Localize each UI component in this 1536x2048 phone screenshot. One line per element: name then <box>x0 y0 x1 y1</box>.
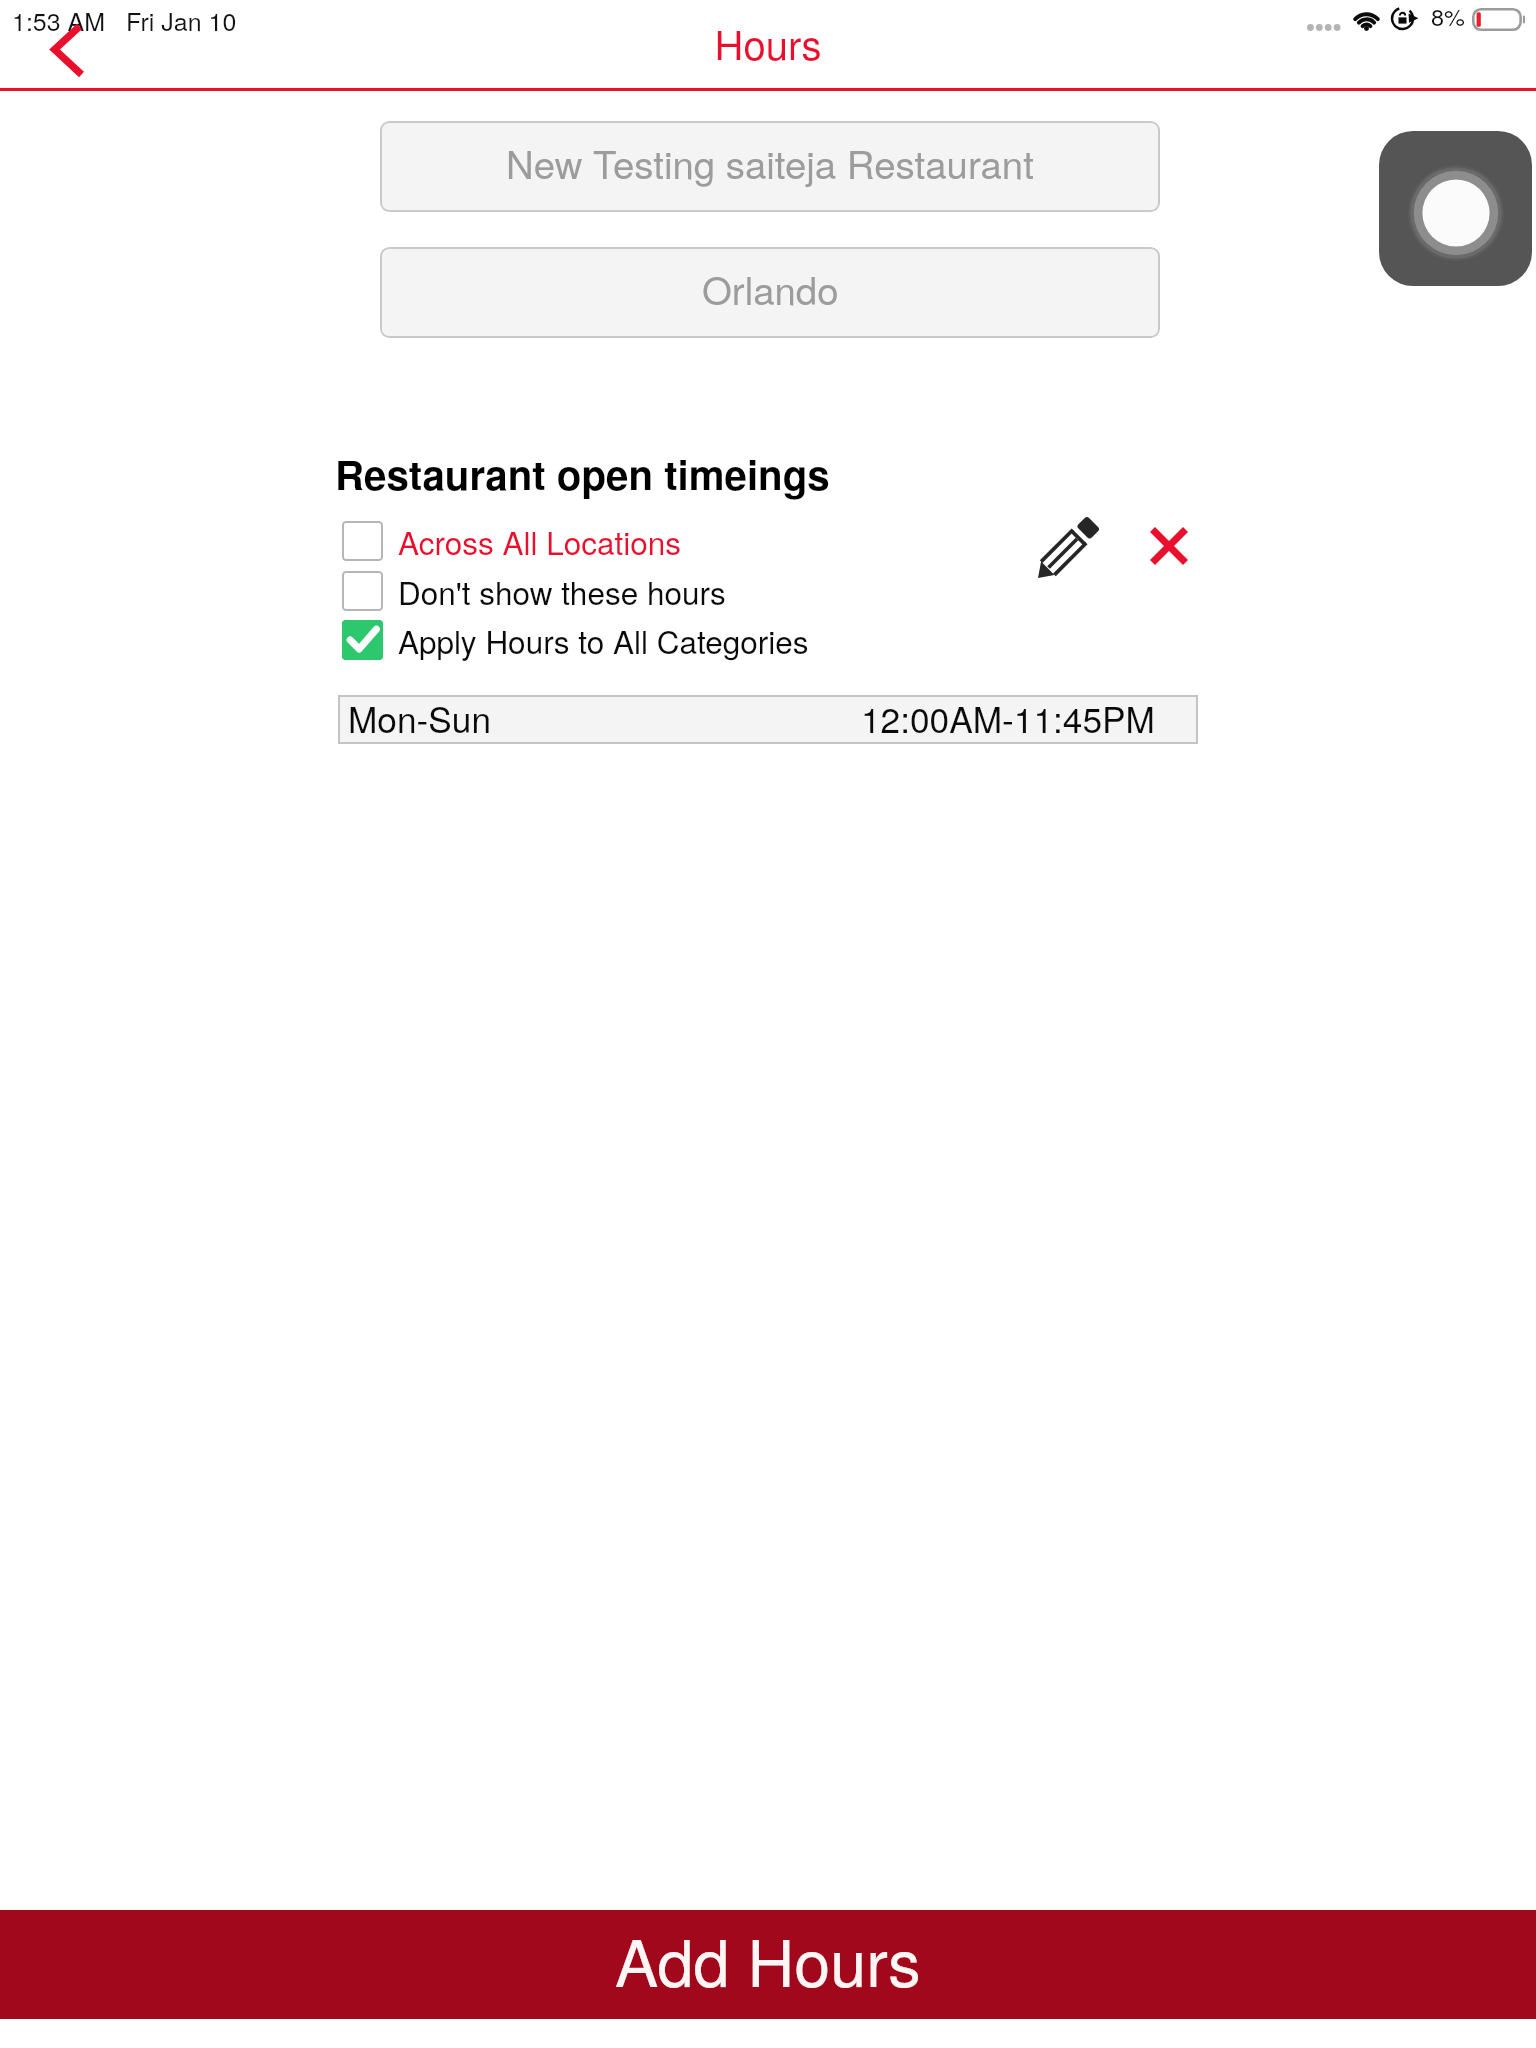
staticText: Add Hours <box>615 1913 921 2006</box>
staticText: New Testing saiteja Restaurant <box>506 135 1034 190</box>
button[interactable]: Edit hours <box>1035 519 1097 581</box>
staticText: 1:53 AM <box>12 2 106 38</box>
staticText: Fri Jan 10 <box>126 2 237 38</box>
button[interactable]: Back <box>26 14 96 86</box>
staticText: Hours <box>0 14 1536 71</box>
button[interactable]: New Testing saiteja Restaurant <box>380 121 1160 212</box>
staticText: Don't show these hours <box>398 569 726 614</box>
staticText: 12:00AM-11:45PM <box>861 693 1155 742</box>
staticText: Mon-Sun <box>348 693 492 742</box>
staticText: Apply Hours to All Categories <box>398 618 809 663</box>
staticText: 8% <box>1431 0 1465 33</box>
button[interactable]: Orlando <box>380 247 1160 338</box>
staticText: Restaurant open timeings <box>335 445 830 503</box>
button[interactable]: Add Hours <box>0 1910 1536 2019</box>
button[interactable]: Mon-Sun <box>338 695 1198 744</box>
button[interactable]: Don't show these hours <box>342 568 726 614</box>
staticText: Orlando <box>702 261 839 316</box>
staticText: Across All Locations <box>398 519 682 564</box>
button[interactable]: Delete hours <box>1133 510 1205 582</box>
button[interactable]: Across All Locations <box>342 518 682 564</box>
button[interactable]: Apply Hours to All Categories <box>342 617 809 663</box>
button[interactable]: AssistiveTouch <box>1379 131 1532 286</box>
